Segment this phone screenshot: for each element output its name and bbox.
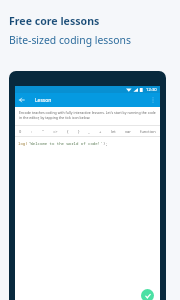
staticText: } — [78, 129, 80, 134]
button[interactable]: } — [77, 129, 81, 134]
staticText: => — [53, 129, 58, 134]
button[interactable]: " — [41, 129, 45, 134]
button[interactable]: 0 — [18, 129, 23, 134]
staticText: " — [42, 129, 44, 134]
staticText: + — [99, 129, 102, 134]
button[interactable]: + — [98, 129, 103, 134]
staticText: function — [140, 129, 156, 134]
button[interactable]: : — [30, 129, 34, 134]
button[interactable]: let — [110, 129, 117, 134]
staticText: : — [31, 129, 33, 134]
staticText: Lesson — [35, 97, 52, 104]
button[interactable]: => — [52, 129, 59, 134]
staticText: var — [125, 129, 131, 134]
staticText: { — [67, 129, 69, 134]
button[interactable]: Back — [15, 93, 29, 107]
staticText: ); — [103, 141, 108, 146]
staticText: Free core lessons — [9, 14, 100, 28]
staticText: let — [111, 129, 116, 134]
staticText: Bite-sized coding lessons — [9, 33, 131, 47]
button[interactable]: var — [124, 129, 132, 134]
button[interactable]: Run code — [141, 289, 154, 300]
staticText: 0 — [19, 129, 22, 134]
button[interactable]: _ — [87, 129, 91, 134]
button[interactable]: { — [66, 129, 70, 134]
staticText: _ — [88, 129, 90, 134]
button[interactable]: function — [139, 129, 157, 134]
button[interactable]: More options — [147, 94, 159, 106]
staticText: 'Welcome to the world of code!' — [28, 141, 103, 146]
staticText: 12:30 — [146, 87, 157, 93]
staticText: Encode teaches coding with fully interac… — [19, 110, 157, 120]
staticText: log( — [18, 141, 28, 146]
